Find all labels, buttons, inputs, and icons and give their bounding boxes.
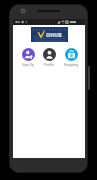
- button[interactable]: Sign Up: [18, 48, 38, 67]
- staticText: OHUB: [46, 32, 62, 39]
- staticText: Shopping: [61, 63, 81, 67]
- staticText: Profile: [39, 63, 59, 67]
- button[interactable]: App logo: [31, 27, 68, 42]
- button[interactable]: Profile: [39, 48, 59, 67]
- button[interactable]: Power button: [88, 66, 90, 90]
- staticText: Sign Up: [18, 63, 38, 67]
- button[interactable]: Shopping: [61, 48, 81, 67]
